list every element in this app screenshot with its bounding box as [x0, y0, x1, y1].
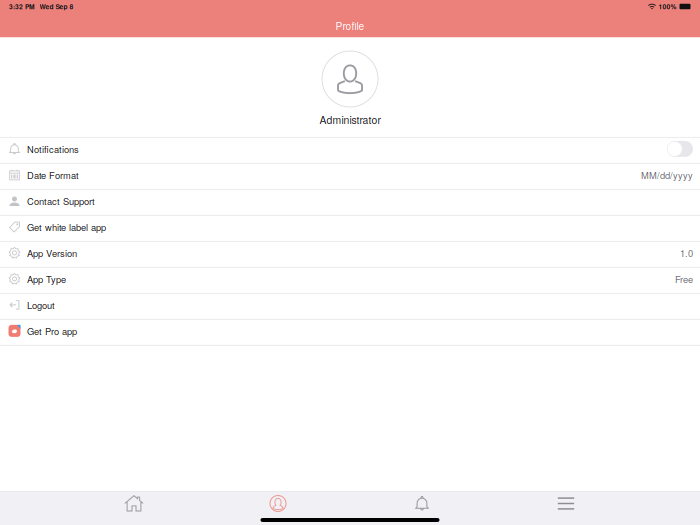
staticText: 100%	[658, 2, 676, 11]
staticText: App Version	[27, 246, 77, 260]
button[interactable]: Date Format	[0, 164, 700, 190]
staticText: Profile	[335, 18, 364, 33]
staticText: Get white label app	[27, 220, 106, 234]
button[interactable]: Contact Support	[0, 190, 700, 216]
staticText: Get Pro app	[27, 324, 77, 338]
staticText: 1.0	[680, 246, 693, 260]
staticText: Contact Support	[27, 194, 95, 208]
button[interactable]: Profile	[206, 491, 350, 515]
staticText: Administrator	[319, 112, 380, 127]
button[interactable]: Home	[62, 491, 206, 515]
staticText: Notifications	[27, 142, 79, 156]
button[interactable]: Get white label app	[0, 216, 700, 242]
button[interactable]: Notifications	[0, 138, 700, 164]
button[interactable]: Notifications	[350, 491, 494, 515]
button[interactable]: Logout	[0, 294, 700, 320]
button[interactable]: App Version	[0, 242, 700, 268]
staticText: App Type	[27, 272, 66, 286]
staticText: Free	[675, 272, 693, 286]
button[interactable]: App Type	[0, 268, 700, 294]
staticText: Wed Sep 8	[39, 2, 73, 11]
button[interactable]: Menu	[494, 491, 638, 515]
staticText: MM/dd/yyyy	[641, 168, 693, 182]
staticText: 3:32 PM	[9, 2, 35, 11]
staticText: Logout	[27, 298, 55, 312]
button[interactable]: Get Pro app	[0, 320, 700, 346]
staticText: Date Format	[27, 168, 79, 182]
